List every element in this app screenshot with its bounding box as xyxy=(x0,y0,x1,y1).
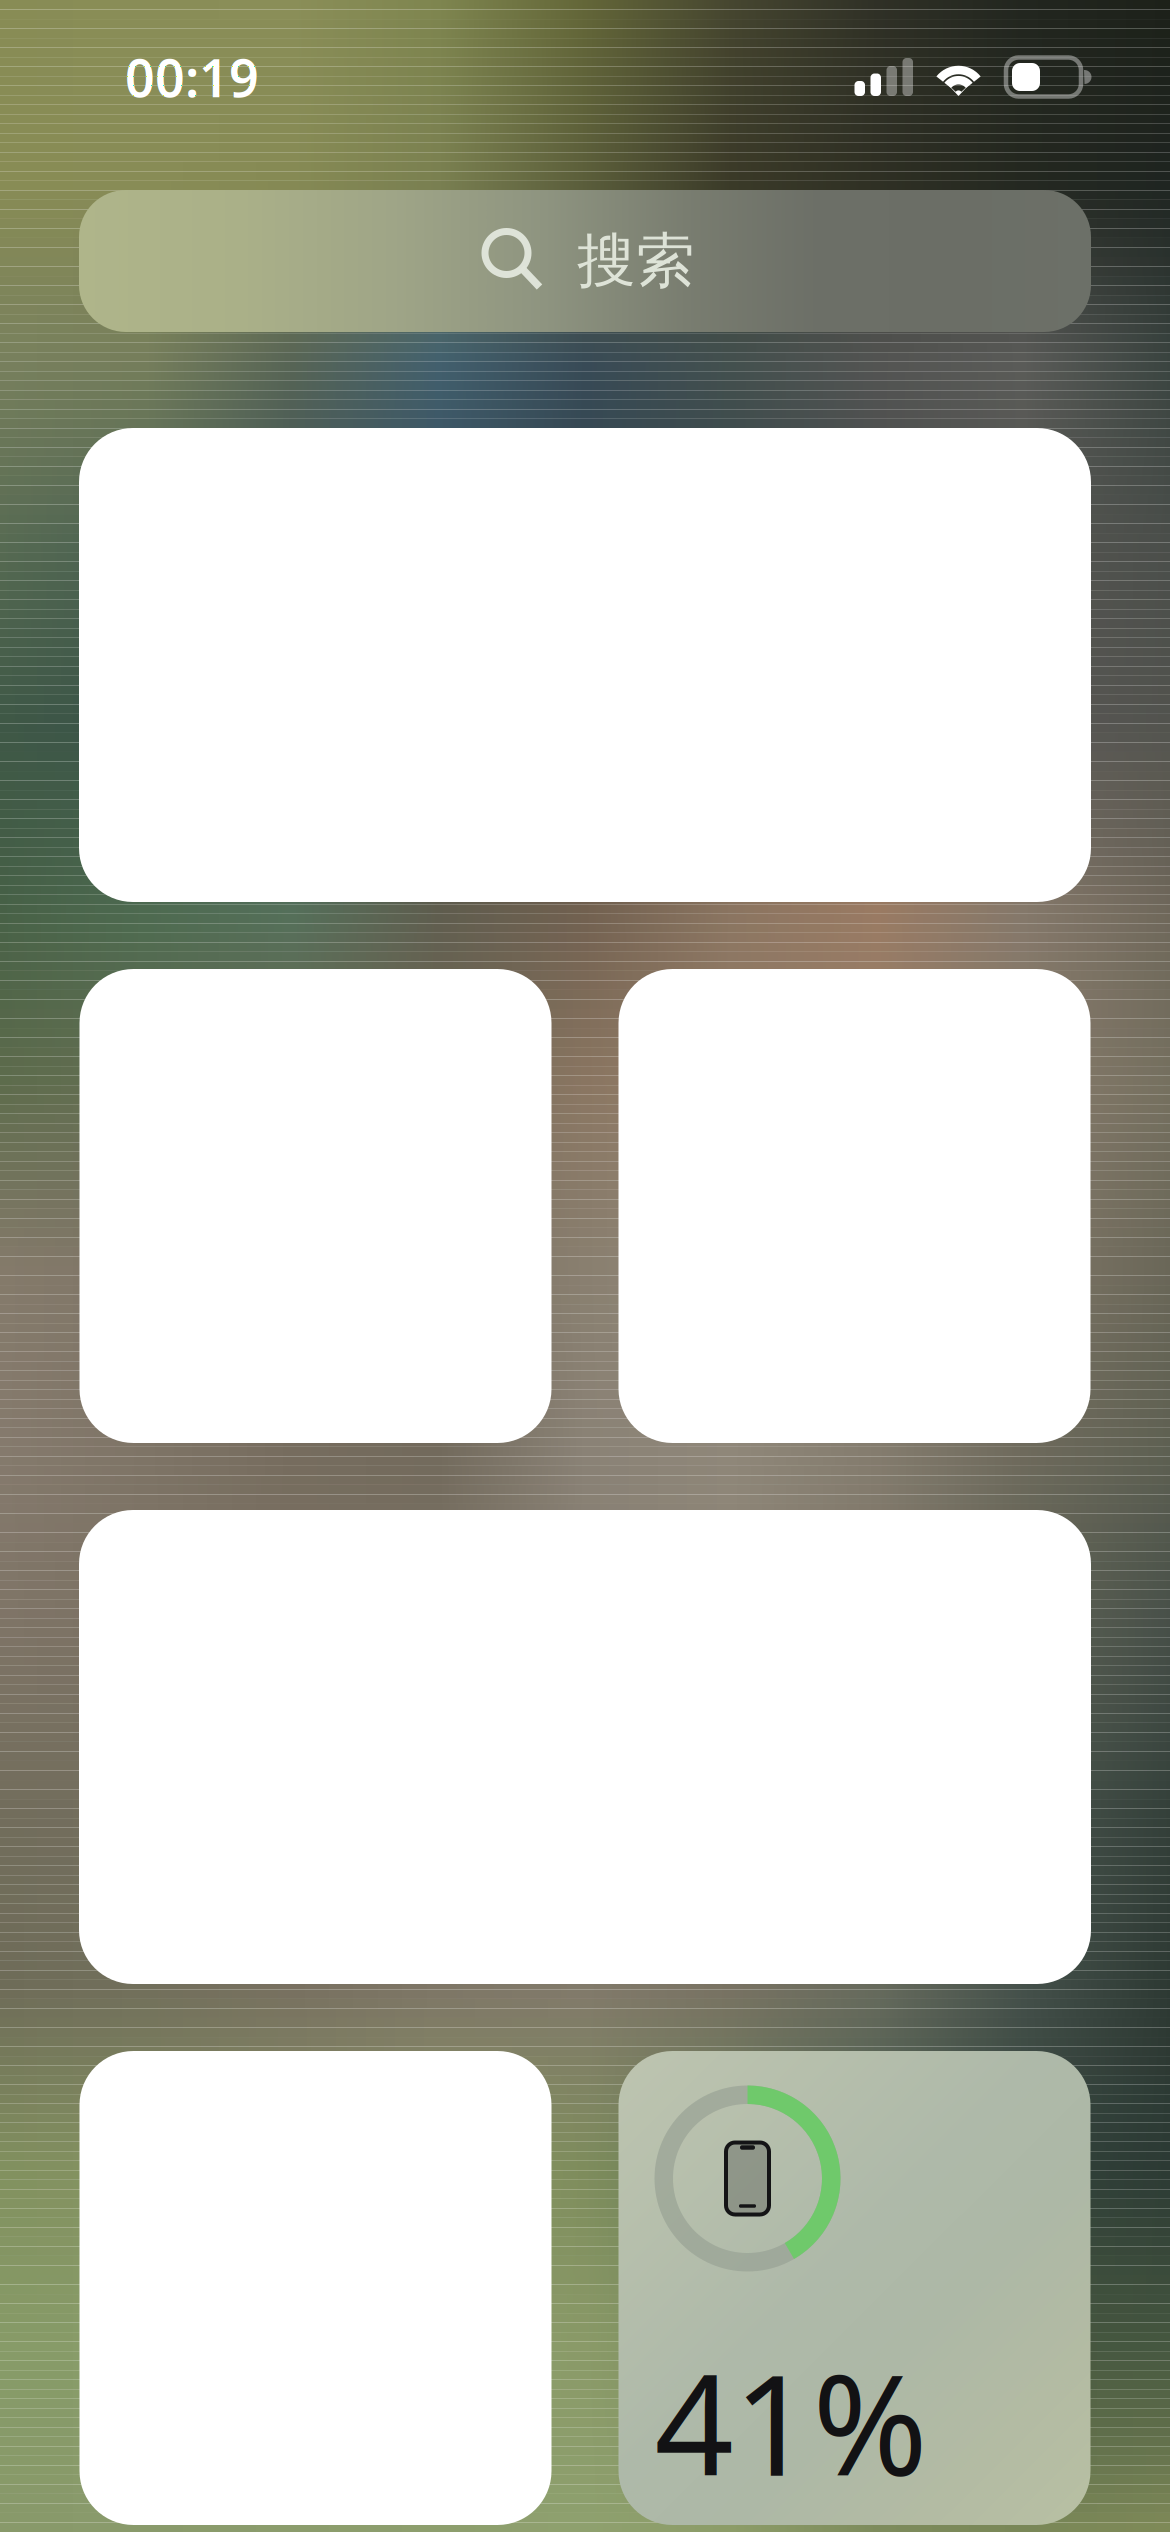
staticText: 搜索 xyxy=(577,225,695,297)
staticText: 41% xyxy=(654,2330,927,2514)
button[interactable]: Widget xyxy=(79,2051,551,2525)
button[interactable]: Batteries, iPhone 41 percent xyxy=(618,2051,1090,2525)
button[interactable]: 搜索 xyxy=(79,190,1091,332)
button[interactable]: Widget xyxy=(618,969,1090,1443)
button[interactable]: Widget xyxy=(79,969,551,1443)
staticText: 00:19 xyxy=(125,42,259,112)
button[interactable]: Widget xyxy=(79,428,1091,902)
button[interactable]: Widget xyxy=(79,1510,1091,1984)
